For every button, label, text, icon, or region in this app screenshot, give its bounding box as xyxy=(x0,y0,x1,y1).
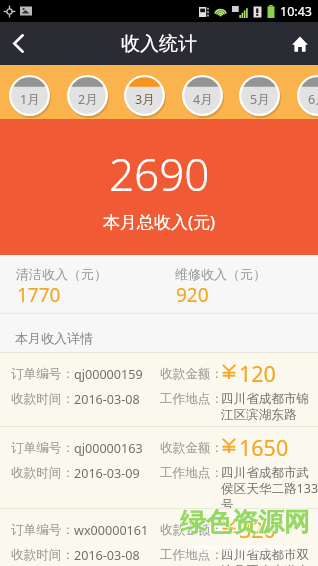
button[interactable]: 6月 xyxy=(297,75,318,116)
staticText: 绿色资源网 xyxy=(181,507,311,540)
staticText: 320 xyxy=(239,515,276,544)
staticText: 收款金额： xyxy=(160,440,223,456)
button[interactable]: Back xyxy=(0,22,36,65)
staticText: 订单编号： xyxy=(11,440,74,456)
button[interactable]: 5月 xyxy=(239,75,280,116)
staticText: 本月总收入(元) xyxy=(103,210,216,233)
staticText: 920 xyxy=(176,282,209,308)
staticText: 绿色资源网 xyxy=(179,505,309,538)
staticText: 5月 xyxy=(250,91,270,108)
button[interactable]: 4月 xyxy=(182,75,223,116)
staticText: 工作地点： xyxy=(160,547,223,563)
staticText: 10:43 xyxy=(280,3,312,20)
staticText: www.downpcs.com xyxy=(192,539,298,554)
staticText: 收款时间： xyxy=(11,391,74,407)
staticText: 1650 xyxy=(239,433,289,462)
staticText: 收款时间： xyxy=(11,547,74,563)
staticText: 维修收入（元） xyxy=(175,266,266,282)
staticText: 2016-03-08 xyxy=(74,547,140,564)
button[interactable]: 订单编号： xyxy=(0,427,318,508)
staticText: 收款金额： xyxy=(160,366,223,382)
staticText: 收款金额： xyxy=(160,522,223,538)
staticText: 2016-03-08 xyxy=(74,391,140,408)
staticText: 四川省成都市锦江区滨湖东路 xyxy=(221,391,318,422)
staticText: 3月 xyxy=(135,91,155,108)
button[interactable]: 3月 xyxy=(124,75,165,116)
button[interactable]: 2月 xyxy=(67,75,108,116)
staticText: 订单编号： xyxy=(11,366,74,382)
staticText: 4月 xyxy=(193,91,213,108)
staticText: qj00000159 xyxy=(74,366,143,383)
staticText: 2月 xyxy=(78,91,98,108)
staticText: 2690 xyxy=(109,144,210,204)
staticText: 本月收入详情 xyxy=(15,330,93,346)
staticText: 收入统计 xyxy=(121,32,197,56)
staticText: 2016-03-09 xyxy=(74,465,140,482)
staticText: 6月 xyxy=(308,91,318,108)
button[interactable]: 1月 xyxy=(9,75,50,116)
staticText: 120 xyxy=(239,359,276,388)
staticText: qj00000163 xyxy=(74,440,143,457)
staticText: 工作地点： xyxy=(160,465,223,481)
staticText: 清洁收入（元） xyxy=(16,266,107,282)
staticText: 1月 xyxy=(20,91,40,108)
staticText: 收款时间： xyxy=(11,465,74,481)
staticText: 1770 xyxy=(17,282,61,308)
button[interactable]: 订单编号： xyxy=(0,353,318,426)
staticText: 四川省成都市双流县正府大道中段 xyxy=(221,547,318,566)
button[interactable]: 订单编号： xyxy=(0,509,318,566)
button[interactable]: Home xyxy=(281,22,318,65)
staticText: 订单编号： xyxy=(11,522,74,538)
staticText: wx00000161 xyxy=(74,522,149,539)
staticText: 绿色资源网 xyxy=(180,506,310,539)
staticText: 四川省成都市武侯区天华二路133号 xyxy=(221,465,318,508)
staticText: 工作地点： xyxy=(160,391,223,407)
